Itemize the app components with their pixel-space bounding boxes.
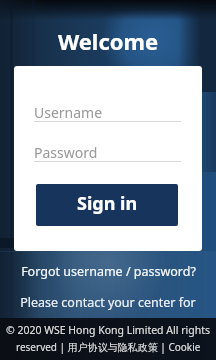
staticText: reserved | 用户协议与隐私政策 | Cookie (16, 340, 201, 354)
button[interactable]: © 2020 WSE Hong Kong Limited All rights (0, 318, 216, 360)
staticText: Forgot username / password? (21, 263, 196, 280)
staticText: Username (34, 103, 103, 122)
button[interactable]: Sign in (36, 184, 178, 226)
staticText: Sign in (77, 191, 138, 216)
staticText: Welcome (0, 26, 216, 56)
staticText: Password (34, 143, 98, 162)
button[interactable]: Forgot username / password? (0, 263, 216, 280)
staticText: © 2020 WSE Hong Kong Limited All rights (6, 323, 210, 337)
staticText: Please contact your center for (0, 294, 216, 311)
